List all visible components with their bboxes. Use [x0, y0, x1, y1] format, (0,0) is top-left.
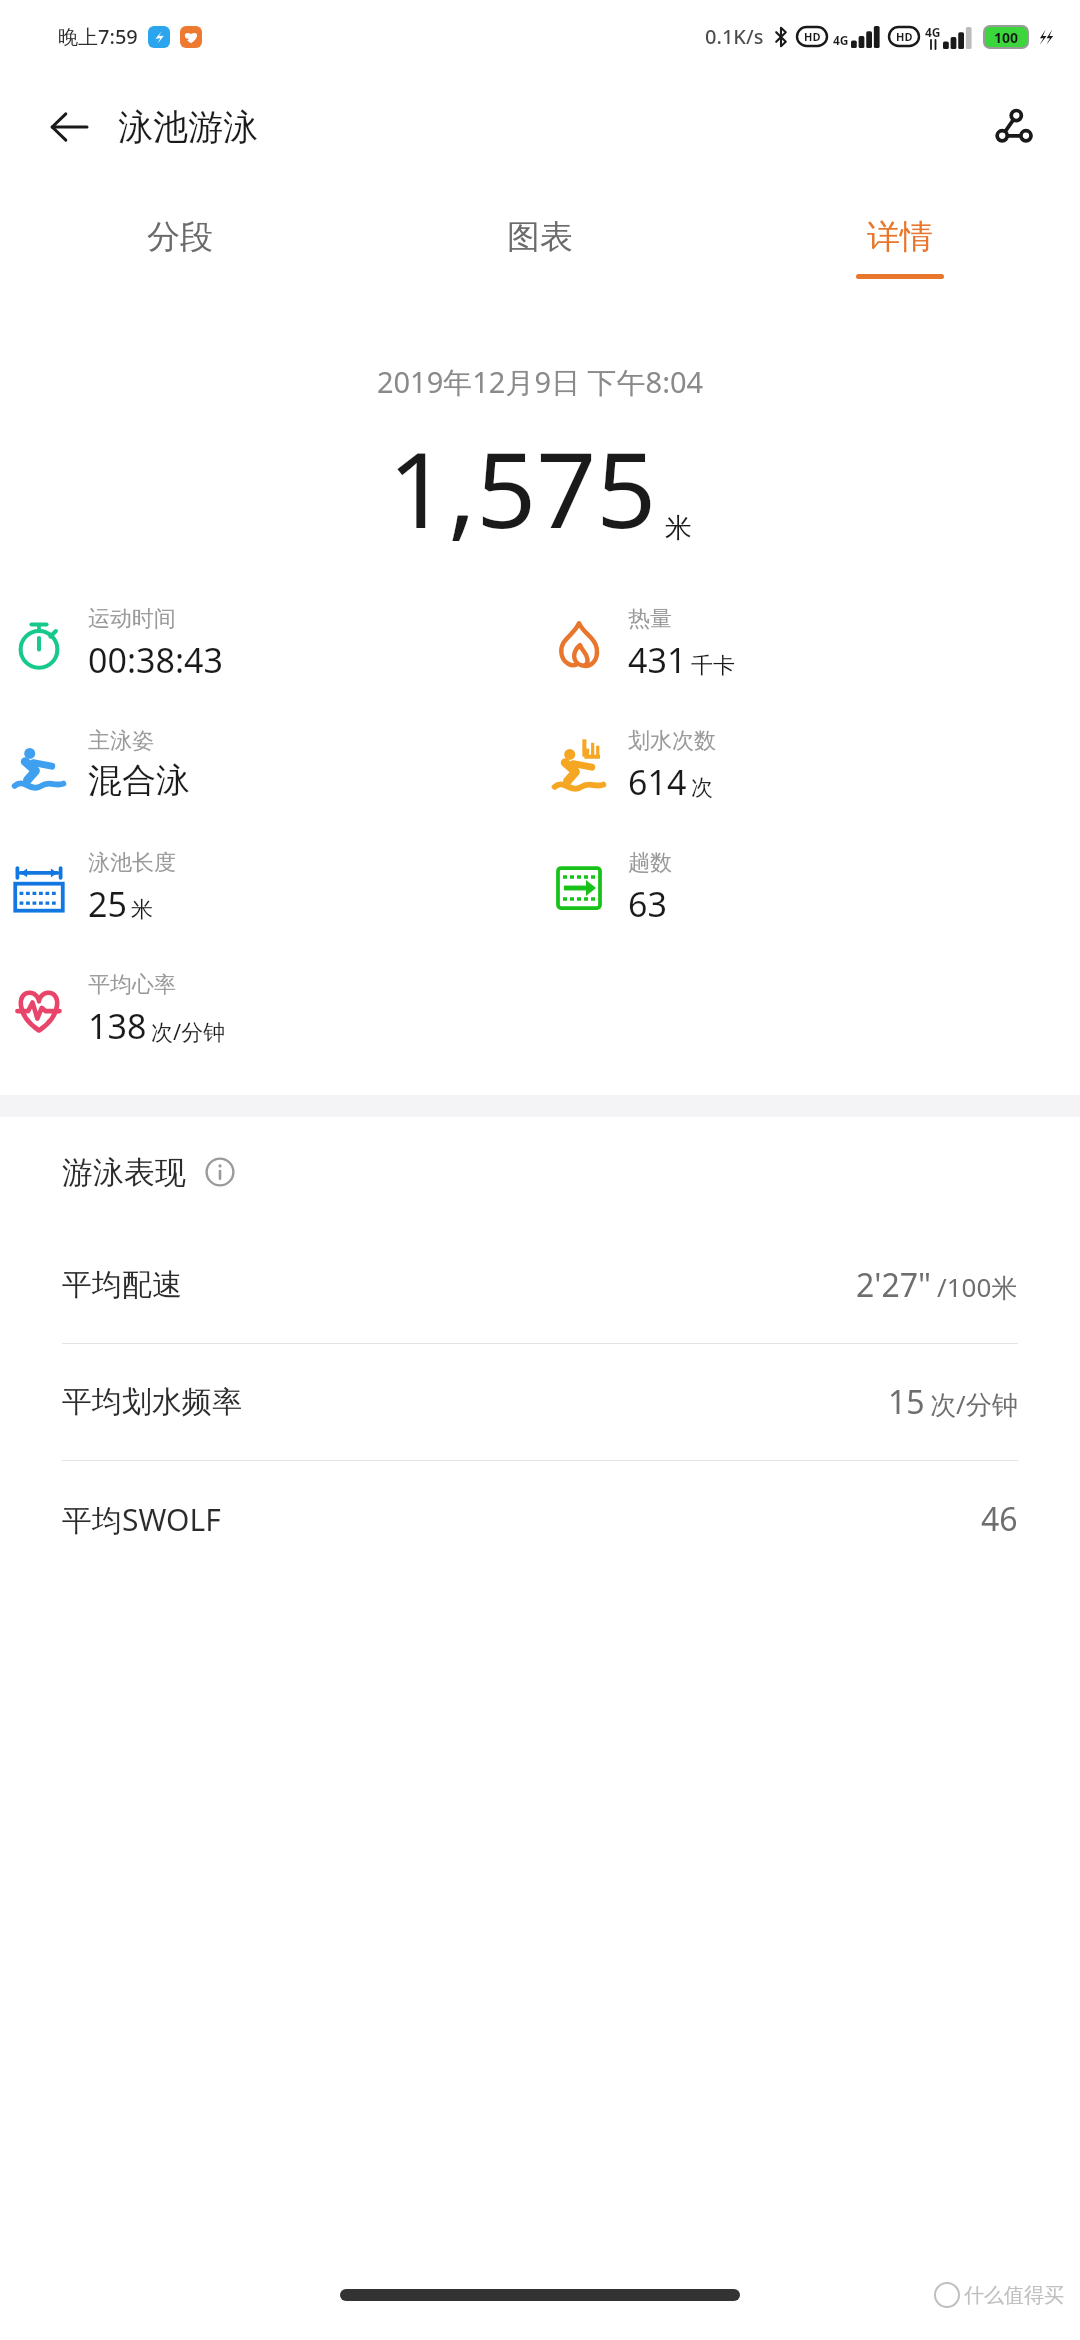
staticText: 详情: [867, 216, 933, 258]
staticText: 次: [691, 774, 713, 802]
button[interactable]: 平均SWOLF: [0, 1460, 1080, 1577]
staticText: 主泳姿: [88, 727, 154, 755]
staticText: 次/分钟: [930, 1386, 1018, 1422]
button[interactable]: 平均划水频率: [0, 1343, 1080, 1460]
staticText: 游泳表现: [62, 1153, 186, 1192]
staticText: 次/分钟: [151, 1016, 226, 1046]
staticText: 46: [981, 1497, 1018, 1541]
staticText: 0.1K/s: [705, 23, 764, 50]
staticText: 平均心率: [88, 971, 176, 999]
button[interactable]: Back: [38, 96, 100, 158]
button[interactable]: 划水次数: [540, 727, 1080, 805]
staticText: HD: [804, 29, 821, 44]
staticText: 晚上7:59: [58, 23, 138, 50]
staticText: 图表: [507, 216, 573, 258]
staticText: 63: [628, 881, 667, 927]
button[interactable]: 热量: [540, 605, 1080, 683]
button[interactable]: 分段: [0, 182, 360, 312]
staticText: 4G: [833, 32, 849, 48]
staticText: 1,575: [388, 416, 657, 559]
button[interactable]: 图表: [360, 182, 720, 312]
staticText: 米: [131, 896, 153, 924]
button[interactable]: Info: [200, 1152, 240, 1192]
staticText: 2'27": [856, 1263, 932, 1307]
button[interactable]: 运动时间: [0, 605, 540, 683]
button[interactable]: Share: [978, 94, 1044, 160]
staticText: 平均SWOLF: [62, 1499, 221, 1540]
staticText: 平均划水频率: [62, 1383, 242, 1421]
staticText: 平均配速: [62, 1266, 182, 1304]
staticText: HD: [896, 29, 913, 44]
staticText: 泳池长度: [88, 849, 176, 877]
button[interactable]: 主泳姿: [0, 727, 540, 802]
staticText: 趟数: [628, 849, 672, 877]
button[interactable]: 详情: [720, 182, 1080, 312]
staticText: 4G: [925, 24, 941, 40]
staticText: /100米: [937, 1269, 1018, 1305]
staticText: 100: [994, 28, 1019, 47]
button[interactable]: 平均心率: [0, 971, 540, 1049]
staticText: 泳池游泳: [118, 105, 258, 149]
staticText: 15: [888, 1380, 925, 1424]
staticText: 614: [628, 759, 687, 805]
staticText: 米: [665, 511, 692, 545]
staticText: 分段: [147, 216, 213, 258]
button[interactable]: 趟数: [540, 849, 1080, 927]
button[interactable]: 平均配速: [0, 1227, 1080, 1343]
staticText: 25: [88, 881, 127, 927]
staticText: 138: [88, 1003, 147, 1049]
staticText: 00:38:43: [88, 637, 223, 683]
staticText: 运动时间: [88, 605, 176, 633]
button[interactable]: 泳池长度: [0, 849, 540, 927]
staticText: 热量: [628, 605, 672, 633]
staticText: 千卡: [691, 652, 735, 680]
staticText: 划水次数: [628, 727, 716, 755]
staticText: 2019年12月9日 下午8:04: [0, 362, 1080, 402]
staticText: 什么值得买: [964, 2283, 1064, 2308]
staticText: 431: [628, 637, 687, 683]
staticText: 混合泳: [88, 759, 190, 802]
